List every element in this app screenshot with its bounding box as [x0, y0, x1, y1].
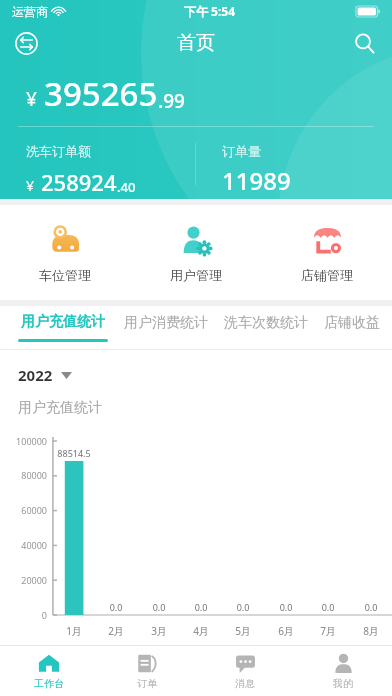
staticText: 订单	[137, 677, 157, 690]
button[interactable]: 用户充值统计	[18, 313, 108, 342]
staticText: 8月	[350, 624, 392, 638]
staticText: 首页	[177, 31, 215, 55]
button[interactable]: 消息	[196, 646, 294, 696]
button[interactable]: 车位管理	[0, 205, 130, 300]
staticText: 3月	[138, 624, 180, 638]
staticText: 用户管理	[170, 267, 222, 283]
staticText: .40	[117, 178, 136, 196]
staticText: 395265	[44, 71, 158, 116]
button[interactable]: 工作台	[0, 646, 98, 696]
staticText: 2022	[18, 365, 53, 385]
staticText: 洗车订单额	[26, 143, 91, 159]
staticText: 我的	[333, 677, 353, 690]
button[interactable]: 我的	[294, 646, 392, 696]
staticText: 2月	[95, 624, 137, 638]
staticText: 店铺管理	[301, 267, 353, 283]
staticText: 6月	[265, 624, 307, 638]
staticText: 5月	[222, 624, 264, 638]
staticText: .99	[158, 88, 185, 114]
staticText: 0.0	[138, 601, 180, 613]
staticText: 0.0	[180, 601, 222, 613]
button[interactable]: 订单	[98, 646, 196, 696]
button[interactable]: 2022	[18, 365, 72, 385]
staticText: 258924	[41, 167, 117, 197]
staticText: 4月	[180, 624, 222, 638]
button[interactable]: Search	[344, 23, 384, 63]
staticText: ¥	[26, 86, 37, 112]
staticText: 88514.5	[53, 447, 95, 459]
staticText: 20000	[0, 574, 47, 586]
button[interactable]: 洗车次数统计	[224, 314, 308, 342]
button[interactable]: 店铺收益	[324, 314, 380, 342]
staticText: 1月	[53, 624, 95, 638]
staticText: 工作台	[34, 677, 64, 690]
staticText: 7月	[307, 624, 349, 638]
staticText: 用户充值统计	[21, 313, 105, 331]
staticText: 消息	[235, 677, 255, 690]
staticText: 0.0	[95, 601, 137, 613]
staticText: 40000	[0, 539, 47, 551]
staticText: 下午 5:54	[184, 3, 236, 19]
button[interactable]: Switch account	[6, 23, 46, 63]
staticText: 80000	[0, 469, 47, 481]
staticText: 60000	[0, 504, 47, 516]
button[interactable]: 用户管理	[130, 205, 261, 300]
staticText: 0.0	[265, 601, 307, 613]
button[interactable]: 店铺管理	[261, 205, 392, 300]
staticText: 订单量	[222, 143, 261, 159]
staticText: 11989	[222, 164, 291, 197]
staticText: 0.0	[307, 601, 349, 613]
staticText: 用户充值统计	[18, 399, 102, 417]
staticText: 运营商	[12, 4, 48, 19]
staticText: 100000	[0, 435, 47, 447]
staticText: 车位管理	[39, 267, 91, 283]
staticText: 0	[0, 609, 47, 621]
staticText: 0.0	[350, 601, 392, 613]
staticText: 0.0	[222, 601, 264, 613]
staticText: ¥	[26, 176, 35, 195]
button[interactable]: 用户消费统计	[124, 314, 208, 342]
